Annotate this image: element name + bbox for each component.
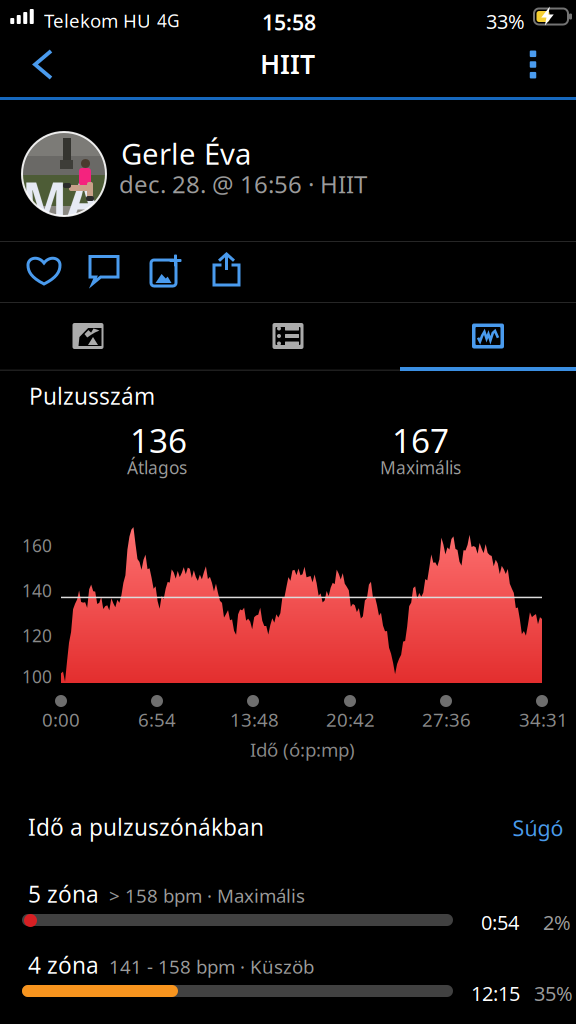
button[interactable]: MA <box>0 100 576 241</box>
staticText: 35% <box>534 980 573 1007</box>
staticText: 33% <box>486 8 525 35</box>
staticText: 12:15 <box>471 980 520 1007</box>
staticText: 27:36 <box>422 707 471 732</box>
staticText: Gerle Éva <box>121 134 251 173</box>
staticText: Átlagos <box>127 456 187 479</box>
staticText: > 158 bpm · Maximális <box>109 883 305 908</box>
button[interactable]: Splits <box>194 303 382 369</box>
staticText: 15:58 <box>262 8 316 36</box>
staticText: dec. 28. @ 16:56 · HIIT <box>119 168 367 200</box>
staticText: 13:48 <box>230 707 279 732</box>
staticText: 5 zóna <box>28 879 99 909</box>
button[interactable]: Like <box>13 242 75 299</box>
staticText: HIIT <box>260 46 315 81</box>
button[interactable]: More options <box>499 36 567 93</box>
button[interactable]: Back <box>6 36 80 93</box>
staticText: 4 zóna <box>28 950 99 980</box>
staticText: Idő (ó:p:mp) <box>250 737 355 762</box>
staticText: 160 <box>22 534 52 557</box>
staticText: Maximális <box>380 456 461 479</box>
staticText: 0:00 <box>42 707 80 732</box>
button[interactable]: Share <box>196 242 258 303</box>
staticText: 167 <box>392 418 449 462</box>
staticText: 141 - 158 bpm · Küszöb <box>109 954 314 979</box>
button[interactable]: Add photo <box>135 242 197 303</box>
staticText: 140 <box>22 579 52 602</box>
staticText: 100 <box>22 665 52 688</box>
button[interactable]: Analysis <box>394 303 576 369</box>
button[interactable]: Súgó <box>500 810 576 846</box>
button[interactable]: Map <box>0 303 182 369</box>
staticText: 20:42 <box>326 707 375 732</box>
staticText: 34:31 <box>519 707 568 732</box>
staticText: 2% <box>543 909 571 936</box>
staticText: 4G <box>157 9 180 32</box>
staticText: 136 <box>130 418 187 462</box>
staticText: 0:54 <box>481 909 519 936</box>
staticText: Súgó <box>512 814 563 842</box>
staticText: Pulzusszám <box>29 381 155 411</box>
button[interactable]: Comment <box>73 242 135 298</box>
staticText: Telekom HU <box>44 8 151 33</box>
staticText: MA <box>22 167 100 231</box>
staticText: Idő a pulzuszónákban <box>28 812 264 842</box>
staticText: 120 <box>22 624 52 647</box>
staticText: 6:54 <box>138 707 176 732</box>
